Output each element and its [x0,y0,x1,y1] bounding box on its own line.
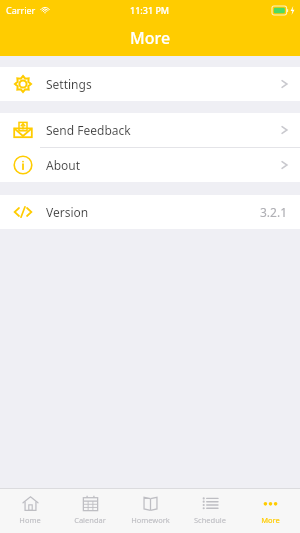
staticText: Home [19,515,41,525]
staticText: Schedule [194,515,226,525]
staticText: 11:31 PM [130,4,170,16]
staticText: Carrier [6,4,36,16]
button[interactable]: Send Feedback [0,113,300,147]
staticText: Send Feedback [46,122,131,138]
staticText: More [261,515,280,525]
staticText: About [46,157,81,173]
button[interactable]: Schedule [180,489,240,533]
button[interactable]: Calendar [60,489,120,533]
button[interactable]: Settings [0,67,300,101]
staticText: Calendar [74,515,106,525]
staticText: More [130,27,171,49]
staticText: 3.2.1 [260,204,288,220]
staticText: Settings [46,76,92,92]
button[interactable]: About [0,148,300,182]
staticText: Version [46,204,89,220]
button[interactable]: Home [0,489,60,533]
button[interactable]: Version [0,195,300,229]
button[interactable]: More [240,489,300,533]
button[interactable]: Homework [120,489,180,533]
staticText: Homework [131,515,170,525]
